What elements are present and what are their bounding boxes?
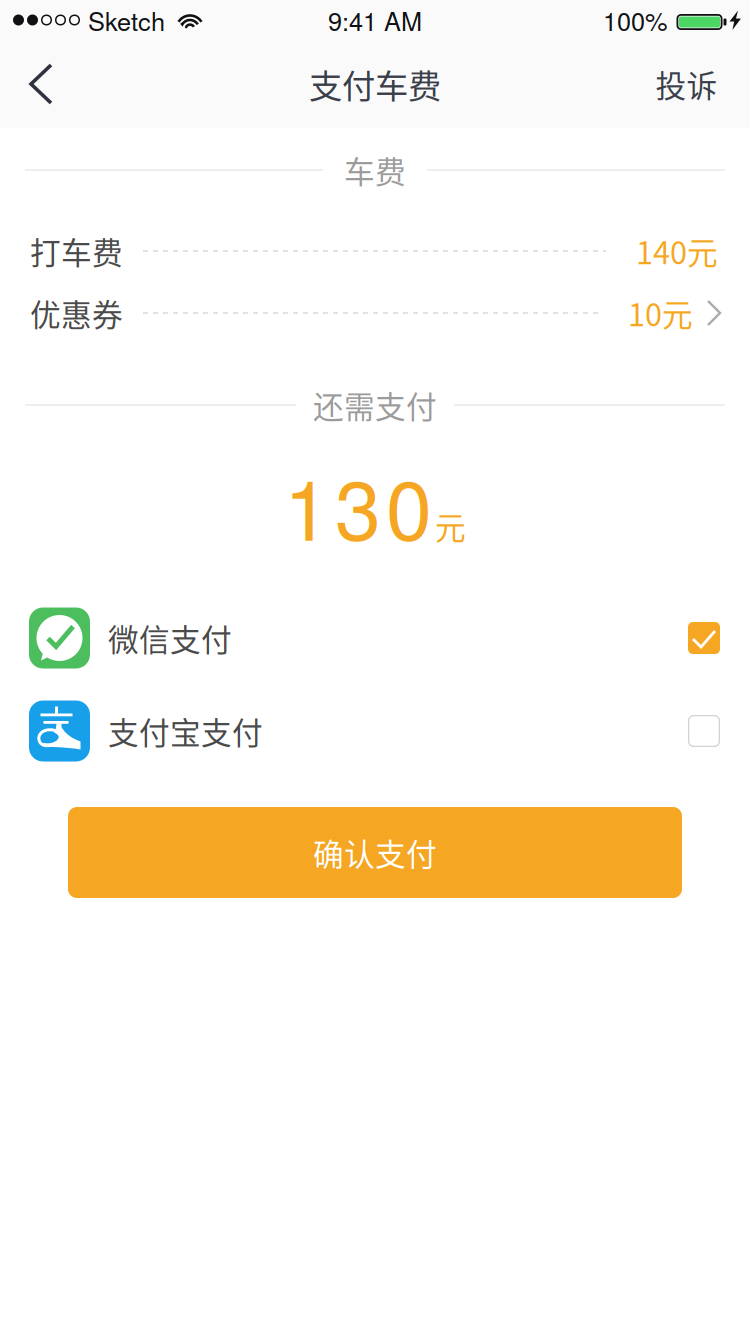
button[interactable]: 微信支付 [0, 593, 750, 683]
staticText: 100% [603, 2, 668, 38]
staticText: 车费 [344, 148, 406, 192]
staticText: 130 [284, 446, 432, 564]
button[interactable]: 返回 [0, 40, 80, 128]
button[interactable]: 打车费 [0, 221, 750, 281]
staticText: 支付车费 [309, 60, 441, 108]
staticText: 支付宝支付 [108, 709, 263, 753]
button[interactable]: 投诉 [640, 40, 733, 128]
staticText: 还需支付 [313, 383, 437, 427]
staticText: 元 [435, 504, 466, 548]
button[interactable]: 支付宝支付 [0, 686, 750, 776]
staticText: 9:41 AM [328, 2, 422, 38]
button[interactable]: 确认支付 [68, 807, 682, 898]
button[interactable]: 优惠券 [0, 283, 750, 343]
staticText: 140元 [636, 229, 718, 273]
staticText: 确认支付 [313, 830, 437, 875]
staticText: 微信支付 [108, 616, 232, 660]
staticText: 打车费 [30, 229, 123, 273]
staticText: 投诉 [655, 62, 717, 106]
staticText: Sketch [88, 2, 165, 38]
staticText: 10元 [628, 291, 693, 335]
staticText: 优惠券 [30, 291, 123, 335]
